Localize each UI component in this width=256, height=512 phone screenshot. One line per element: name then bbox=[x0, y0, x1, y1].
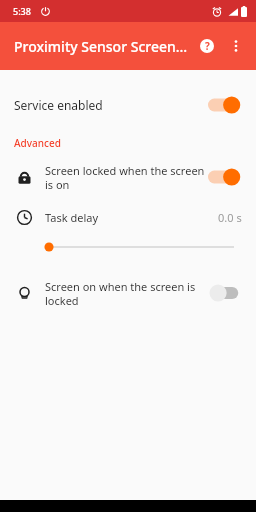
staticText: 0.0 s bbox=[218, 210, 242, 225]
staticText: Service enabled bbox=[14, 97, 103, 113]
button[interactable]: Task delay slider bbox=[0, 234, 256, 260]
staticText: ? bbox=[205, 39, 210, 53]
button[interactable]: Toggle off bbox=[208, 282, 244, 304]
button[interactable]: Task delay bbox=[0, 200, 256, 234]
staticText: Proximity Sensor Screen… bbox=[14, 37, 188, 56]
staticText: Advanced bbox=[14, 136, 61, 150]
button[interactable]: Screen locked when the screen is on bbox=[0, 154, 256, 200]
staticText: Screen locked when the screen is on bbox=[45, 163, 205, 192]
button[interactable]: Screen on when the screen is locked bbox=[0, 270, 256, 316]
button[interactable]: More options bbox=[222, 32, 250, 60]
button[interactable]: Help bbox=[192, 31, 222, 61]
button[interactable]: Toggle on bbox=[208, 166, 244, 188]
staticText: Screen on when the screen is locked bbox=[45, 279, 196, 308]
staticText: Task delay bbox=[45, 210, 98, 225]
button[interactable]: Toggle on bbox=[208, 94, 244, 116]
staticText: 5:38 bbox=[13, 5, 31, 17]
button[interactable]: Service enabled bbox=[0, 82, 256, 128]
